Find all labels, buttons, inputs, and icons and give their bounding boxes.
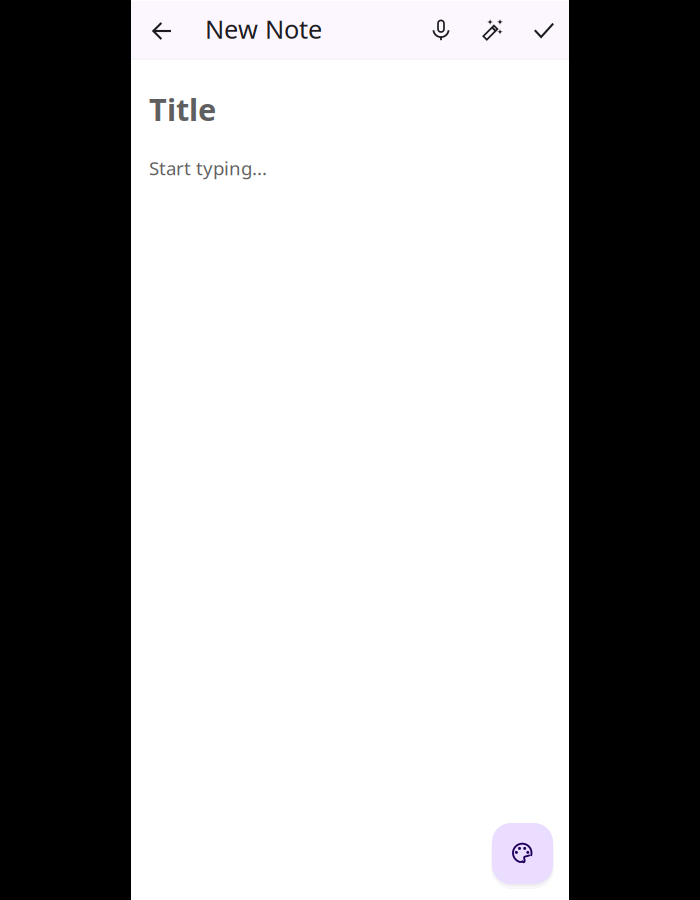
button[interactable]: Dictate — [417, 6, 465, 54]
button[interactable]: Back — [138, 7, 186, 55]
staticText: New Note — [205, 12, 322, 46]
button[interactable]: AI enhance — [469, 6, 517, 54]
button[interactable]: Save note — [520, 5, 568, 53]
button[interactable]: Change note colour — [492, 823, 553, 884]
staticText: Start typing... — [149, 156, 267, 180]
staticText: Title — [149, 89, 216, 129]
